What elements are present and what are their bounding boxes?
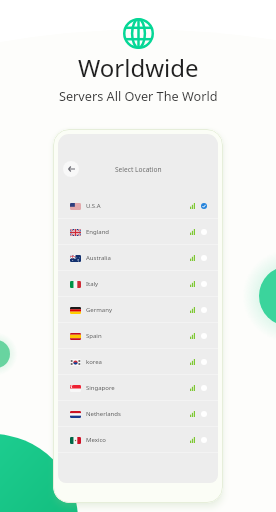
button[interactable]: Singapore: [58, 375, 218, 401]
staticText: Singapore: [86, 384, 115, 392]
button[interactable]: Italy: [58, 271, 218, 297]
button[interactable]: Australia: [58, 245, 218, 271]
staticText: England: [86, 228, 110, 236]
staticText: Select Location: [115, 165, 162, 174]
button[interactable]: korea: [58, 349, 218, 375]
staticText: Worldwide: [78, 51, 199, 84]
button[interactable]: England: [58, 219, 218, 245]
button[interactable]: U.S.A: [58, 193, 218, 219]
staticText: Servers All Over The World: [59, 87, 218, 104]
staticText: Netherlands: [86, 410, 121, 418]
staticText: Australia: [86, 254, 111, 262]
button[interactable]: Back: [63, 161, 79, 177]
staticText: U.S.A: [86, 202, 101, 210]
button[interactable]: Spain: [58, 323, 218, 349]
staticText: Germany: [86, 306, 112, 314]
staticText: Mexico: [86, 436, 106, 444]
staticText: Italy: [86, 280, 99, 288]
button[interactable]: Germany: [58, 297, 218, 323]
button[interactable]: Netherlands: [58, 401, 218, 427]
staticText: Spain: [86, 332, 102, 340]
button[interactable]: Mexico: [58, 427, 218, 453]
staticText: korea: [86, 358, 102, 366]
